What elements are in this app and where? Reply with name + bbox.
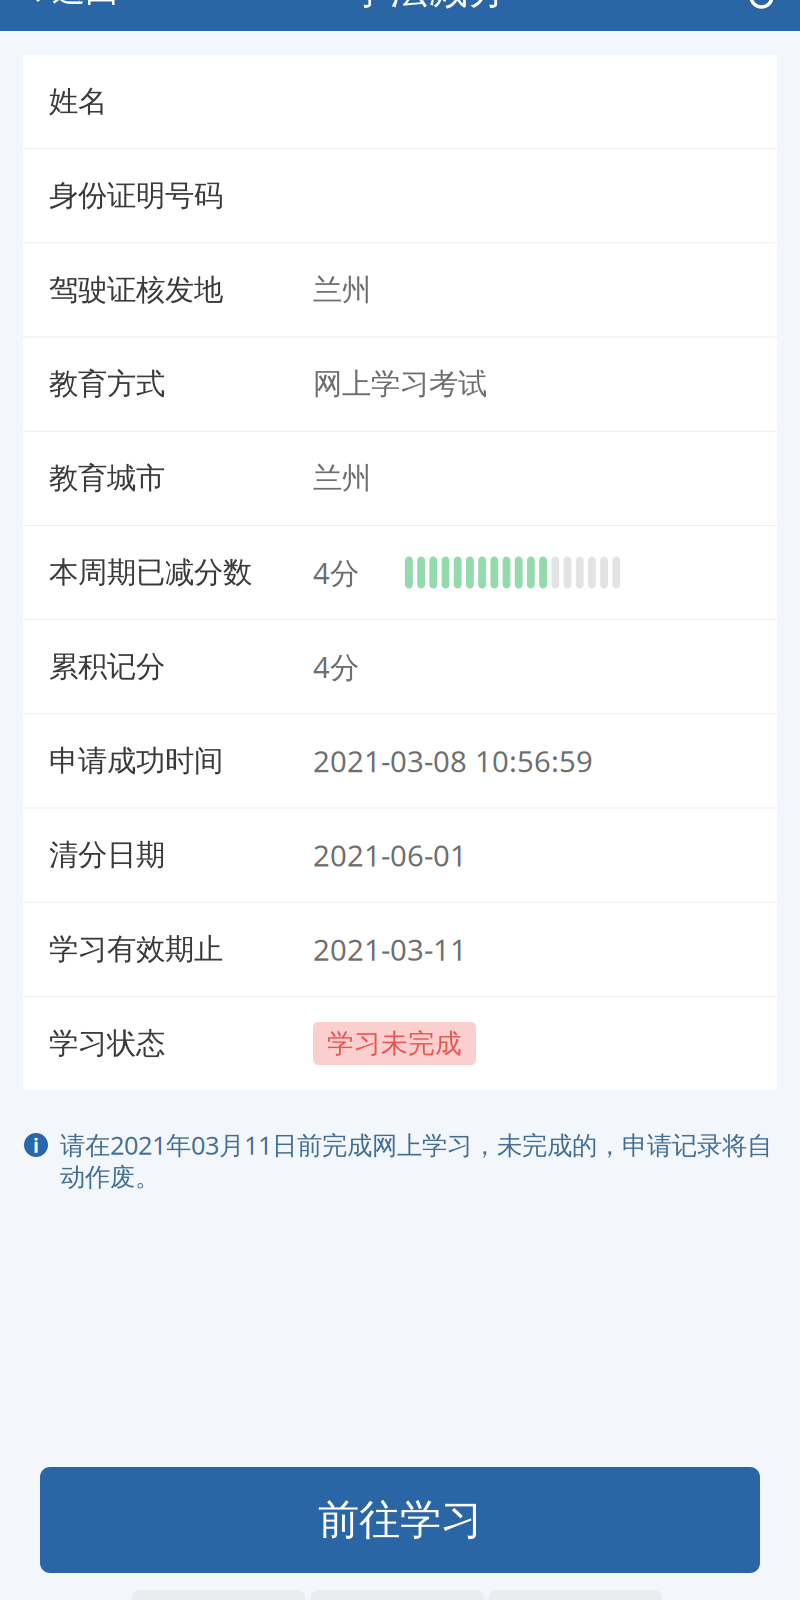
staticText: 身份证明号码 — [49, 178, 223, 214]
staticText: i — [33, 1132, 39, 1158]
staticText: 学习有效期止 — [49, 931, 223, 967]
staticText: 累积记分 — [49, 649, 165, 685]
staticText: 4分 — [313, 553, 359, 592]
button[interactable]: Search — [740, 0, 774, 5]
staticText: 本周期已减分数 — [49, 554, 252, 590]
staticText: 前往学习 — [318, 1495, 482, 1545]
staticText: 网上学习考试 — [313, 366, 487, 402]
staticText: 学习状态 — [49, 1025, 165, 1061]
staticText: 2021-03-11 — [313, 930, 467, 969]
staticText: 兰州 — [313, 272, 371, 308]
staticText: 申请成功时间 — [49, 743, 223, 779]
staticText: 学法减分 — [351, 0, 507, 14]
staticText: 返回 — [52, 0, 118, 10]
staticText: 2021-06-01 — [313, 836, 467, 875]
staticText: 2021-03-08 10:56:59 — [313, 741, 593, 780]
staticText: 学习未完成 — [327, 1027, 462, 1060]
staticText: 姓名 — [49, 83, 107, 119]
staticText: 请在2021年03月11日前完成网上学习，未完成的，申请记录将自动作废。 — [60, 1128, 772, 1193]
staticText: 驾驶证核发地 — [49, 272, 223, 308]
button[interactable]: Back — [26, 0, 118, 10]
staticText: 兰州 — [313, 460, 371, 496]
staticText: 教育方式 — [49, 366, 165, 402]
button[interactable]: 前往学习 — [40, 1467, 760, 1573]
staticText: 清分日期 — [49, 837, 165, 873]
staticText: 4分 — [313, 647, 359, 686]
staticText: 教育城市 — [49, 460, 165, 496]
